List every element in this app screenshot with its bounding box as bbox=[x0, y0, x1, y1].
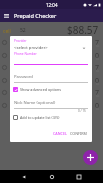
staticText: Add to update list (3/5) bbox=[20, 115, 60, 120]
button[interactable]: Show advanced options bbox=[13, 87, 62, 92]
staticText: 0 / 15 bbox=[78, 109, 86, 113]
staticText: $88.57 bbox=[67, 23, 99, 37]
button[interactable]: CANCEL bbox=[51, 129, 69, 138]
staticText: 12:04 bbox=[46, 2, 58, 8]
staticText: <select provider> bbox=[14, 45, 48, 51]
button[interactable]: Home bbox=[45, 170, 58, 183]
staticText: kb bbox=[96, 82, 100, 86]
button[interactable]: Back bbox=[17, 170, 30, 183]
button[interactable]: Recent apps bbox=[72, 170, 85, 183]
staticText: Show advanced options bbox=[20, 87, 62, 92]
staticText: Nick Name (optional) bbox=[14, 100, 56, 106]
staticText: cell bbox=[3, 28, 11, 35]
staticText: 7 bbox=[95, 38, 100, 48]
staticText: kb bbox=[96, 57, 100, 61]
staticText: kb bbox=[96, 94, 100, 98]
staticText: 0 bbox=[95, 76, 100, 86]
button[interactable]: Open navigation menu bbox=[2, 11, 11, 20]
staticText: Password bbox=[14, 74, 33, 80]
staticText: 0 bbox=[95, 51, 100, 61]
staticText: Provider bbox=[14, 39, 27, 43]
staticText: 0 bbox=[95, 101, 100, 111]
button[interactable]: CONFIRM bbox=[68, 129, 89, 138]
staticText: Prepaid Checker bbox=[14, 12, 57, 19]
staticText: 7 bbox=[95, 63, 100, 73]
staticText: Phone Number bbox=[14, 52, 37, 56]
button[interactable]: Add bbox=[83, 150, 98, 165]
staticText: CANCEL bbox=[53, 131, 67, 136]
staticText: 7 bbox=[95, 88, 100, 98]
button[interactable]: Add to update list (3/5) bbox=[13, 115, 60, 120]
staticText: CONFIRM bbox=[70, 131, 87, 136]
staticText: 52 bbox=[20, 27, 26, 34]
staticText: kb bbox=[96, 69, 100, 73]
staticText: kb bbox=[96, 107, 100, 111]
staticText: kb bbox=[96, 44, 100, 48]
